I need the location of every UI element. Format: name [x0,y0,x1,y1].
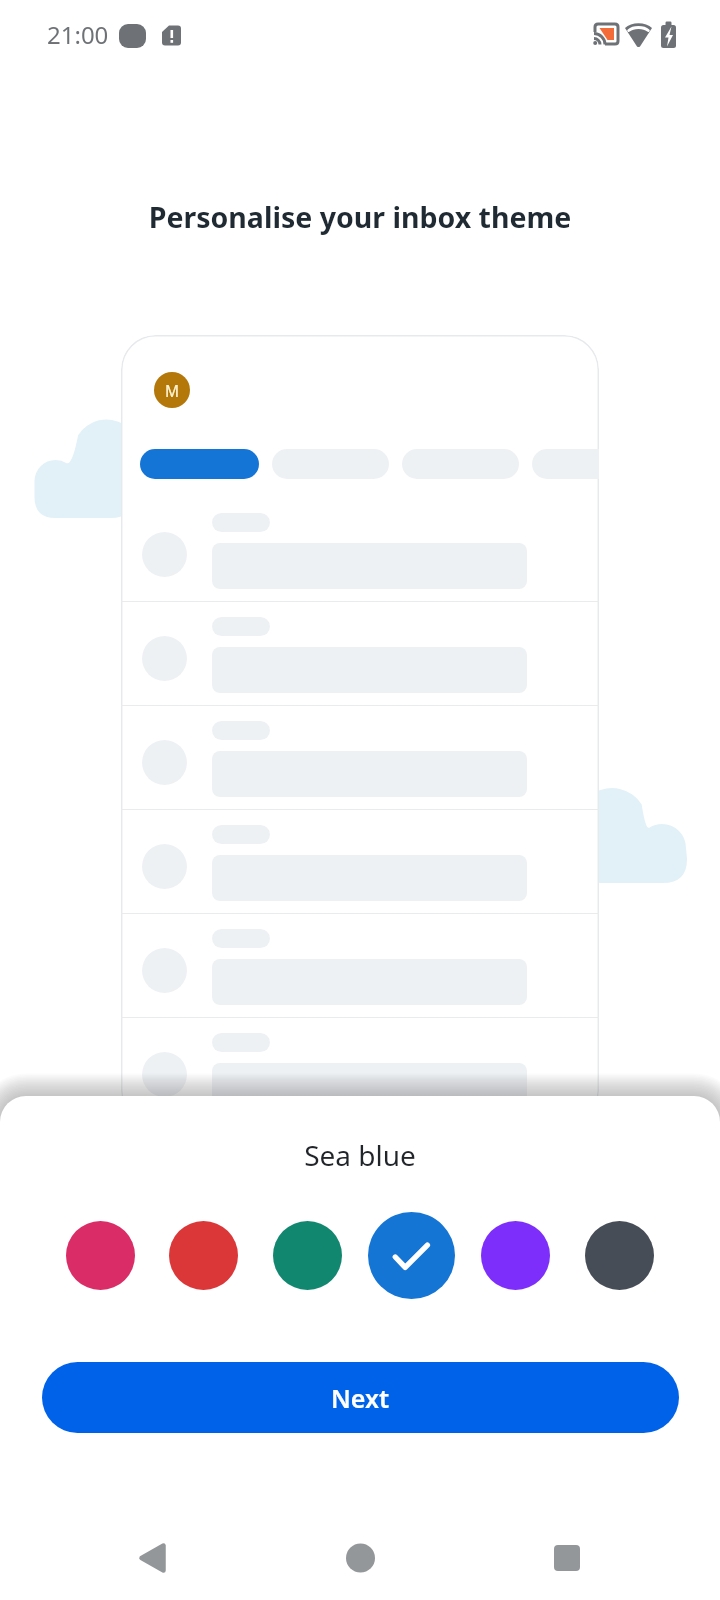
button[interactable]: Recents [519,1510,615,1600]
staticText: Next [331,1381,390,1415]
button[interactable]: Next [42,1362,679,1433]
staticText: 21:00 [47,18,109,51]
button[interactable]: Back [110,1510,206,1600]
staticText: M [165,380,180,401]
button[interactable]: Violet theme [481,1221,550,1290]
button[interactable]: Sea blue theme, selected [368,1212,455,1299]
staticText: Sea blue [0,1136,720,1174]
button[interactable]: Rose pink theme [66,1221,135,1290]
button[interactable]: Forest green theme [273,1221,342,1290]
staticText: Personalise your inbox theme [0,198,720,237]
button[interactable]: Graphite theme [585,1221,654,1290]
button[interactable]: Home [312,1510,408,1600]
button[interactable]: Red theme [169,1221,238,1290]
